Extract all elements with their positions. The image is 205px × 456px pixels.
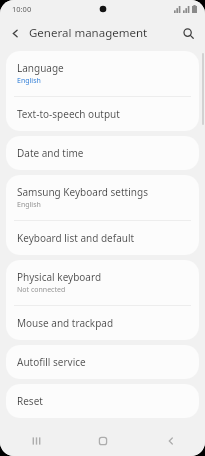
staticText: Physical keyboard — [17, 270, 102, 284]
button[interactable]: Date and time — [6, 136, 199, 170]
staticText: Text-to-speech output — [17, 107, 120, 121]
button[interactable]: Samsung Keyboard settings — [6, 175, 199, 220]
button[interactable]: Reset — [6, 384, 199, 418]
staticText: English — [17, 76, 41, 86]
staticText: Autofill service — [17, 355, 86, 369]
staticText: Language — [17, 61, 64, 75]
button[interactable]: Back — [4, 22, 26, 44]
button[interactable]: Physical keyboard — [6, 260, 199, 305]
staticText: General management — [29, 25, 148, 41]
staticText: Reset — [17, 394, 43, 408]
staticText: Mouse and trackpad — [17, 316, 114, 330]
button[interactable]: Home — [69, 426, 137, 456]
button[interactable]: Back — [137, 426, 205, 456]
button[interactable]: Text-to-speech output — [6, 97, 199, 131]
button[interactable]: Keyboard list and default — [6, 221, 199, 255]
staticText: English — [17, 200, 41, 210]
staticText: Date and time — [17, 146, 84, 160]
button[interactable]: Search — [177, 22, 199, 44]
staticText: Not connected — [17, 285, 66, 295]
button[interactable]: Autofill service — [6, 345, 199, 379]
button[interactable]: Recent apps — [0, 426, 69, 456]
staticText: Samsung Keyboard settings — [17, 185, 148, 199]
staticText: 10:00 — [12, 4, 32, 14]
button[interactable]: Mouse and trackpad — [6, 306, 199, 340]
staticText: Keyboard list and default — [17, 231, 135, 245]
button[interactable]: Language — [6, 51, 199, 96]
